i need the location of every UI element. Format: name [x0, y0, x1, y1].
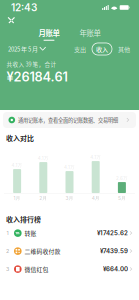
button[interactable]: 其他 — [115, 43, 133, 55]
staticText: 支出 — [74, 45, 86, 53]
staticText: 二维码收付款 — [25, 247, 61, 255]
button[interactable]: 2 — [0, 242, 139, 260]
staticText: ¥7439.59 — [100, 247, 128, 255]
staticText: 月账单 — [38, 27, 59, 38]
staticText: 4.1万 — [90, 154, 101, 160]
staticText: 12:43 — [11, 1, 37, 14]
staticText: 微信红包 — [25, 265, 49, 273]
button[interactable]: 2025 年 5 月 — [8, 45, 43, 53]
button[interactable]: 通用记账本，查看全面的记账数据、交易明细 — [3, 112, 136, 128]
staticText: 收入 — [96, 45, 108, 53]
staticText: ¥664.00 — [103, 265, 128, 273]
button[interactable]: 1 — [0, 224, 139, 242]
staticText: 1月 — [14, 195, 21, 201]
button[interactable]: 收入 — [92, 43, 112, 55]
button[interactable]: 年账单 — [76, 27, 103, 41]
staticText: 4.1万 — [38, 155, 49, 161]
staticText: 4.1万 — [12, 162, 23, 168]
staticText: 通用记账本，查看全面的记账数据、交易明细 — [18, 116, 118, 124]
staticText: 3 — [6, 266, 9, 272]
staticText: 4月 — [92, 195, 100, 201]
staticText: 3月 — [65, 195, 73, 201]
staticText: 4.1万 — [64, 164, 75, 170]
staticText: 共收入 39 笔，合计 — [6, 60, 56, 68]
button[interactable]: Close — [5, 14, 19, 26]
staticText: ¥17425.62 — [97, 229, 128, 237]
staticText: 年账单 — [79, 27, 100, 38]
staticText: 其他 — [118, 45, 130, 53]
staticText: 2 — [6, 248, 9, 254]
staticText: 5月 — [118, 195, 126, 201]
staticText: ¥26184.61 — [6, 69, 67, 85]
button[interactable]: 月账单 — [35, 27, 62, 41]
button[interactable]: 支出 — [71, 43, 89, 55]
staticText: 1 — [6, 230, 8, 236]
button[interactable]: 3 — [0, 260, 139, 278]
staticText: 2.6万 — [116, 175, 128, 181]
staticText: 转账 — [25, 229, 37, 237]
staticText: 收入排行榜 — [6, 214, 41, 224]
staticText: 收入对比 — [6, 133, 34, 143]
staticText: 2025 年 5 月 — [8, 45, 38, 53]
staticText: 2月 — [39, 195, 47, 201]
